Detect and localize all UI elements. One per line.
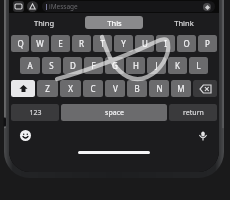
button[interactable]: Shift	[11, 80, 35, 97]
button[interactable]: N	[149, 80, 169, 97]
staticText: Thing	[34, 18, 54, 28]
button[interactable]: Send	[203, 3, 211, 11]
staticText: B	[134, 83, 140, 94]
button[interactable]: Delete	[193, 80, 217, 97]
staticText: G	[112, 60, 118, 71]
staticText: iMessage	[49, 2, 78, 11]
button[interactable]: return	[169, 104, 217, 121]
button[interactable]: X	[60, 80, 81, 97]
button[interactable]: Think	[149, 16, 219, 29]
button[interactable]: S	[42, 57, 61, 74]
button[interactable]: B	[127, 80, 147, 97]
button[interactable]: I	[156, 35, 175, 52]
button[interactable]: G	[105, 57, 124, 74]
button[interactable]: J	[147, 57, 166, 74]
staticText: L	[196, 60, 201, 71]
button[interactable]: Camera	[13, 1, 24, 12]
button[interactable]: F	[84, 57, 103, 74]
button[interactable]: C	[83, 80, 103, 97]
button[interactable]: Emoji	[19, 129, 32, 142]
staticText: S	[49, 60, 54, 71]
staticText: 123	[29, 108, 42, 118]
staticText: H	[133, 60, 139, 71]
staticText: O	[183, 38, 190, 49]
staticText: J	[155, 60, 158, 71]
staticText: E	[58, 38, 63, 49]
button[interactable]: iMessage	[42, 1, 215, 12]
button[interactable]: K	[168, 57, 187, 74]
staticText: return	[183, 108, 204, 118]
button[interactable]: Z	[37, 80, 58, 97]
staticText: D	[70, 60, 76, 71]
button[interactable]: H	[126, 57, 145, 74]
staticText: M	[177, 83, 185, 94]
staticText: K	[175, 60, 180, 71]
button[interactable]: A	[20, 57, 40, 74]
button[interactable]: M	[171, 80, 191, 97]
staticText: F	[91, 60, 96, 71]
staticText: P	[205, 38, 210, 49]
button[interactable]: D	[63, 57, 82, 74]
staticText: U	[142, 38, 148, 49]
button[interactable]: Thing	[9, 16, 79, 29]
staticText: This	[107, 18, 122, 28]
button[interactable]: V	[105, 80, 125, 97]
staticText: Q	[17, 38, 24, 49]
button[interactable]: W	[31, 35, 49, 52]
button[interactable]: U	[135, 35, 154, 52]
button[interactable]: Dictate	[196, 129, 209, 142]
staticText: Think	[174, 18, 194, 28]
button[interactable]: 123	[11, 104, 59, 121]
button[interactable]: L	[189, 57, 208, 74]
staticText: T	[100, 38, 105, 49]
button[interactable]: P	[198, 35, 217, 52]
button[interactable]: Q	[11, 35, 29, 52]
button[interactable]: space	[61, 104, 167, 121]
staticText: C	[90, 83, 96, 94]
button[interactable]: O	[177, 35, 196, 52]
button[interactable]: Y	[114, 35, 133, 52]
button[interactable]: E	[51, 35, 70, 52]
staticText: Z	[45, 83, 50, 94]
staticText: W	[36, 38, 44, 49]
staticText: I	[164, 38, 167, 49]
staticText: X	[68, 83, 73, 94]
staticText: V	[113, 83, 118, 94]
staticText: Y	[121, 38, 126, 49]
staticText: space	[105, 108, 124, 118]
staticText: A	[27, 60, 33, 71]
button[interactable]: T	[93, 35, 112, 52]
staticText: N	[156, 83, 163, 94]
button[interactable]: This	[85, 16, 143, 29]
button[interactable]: Apps	[27, 1, 38, 12]
staticText: R	[79, 38, 84, 49]
button[interactable]: R	[72, 35, 91, 52]
